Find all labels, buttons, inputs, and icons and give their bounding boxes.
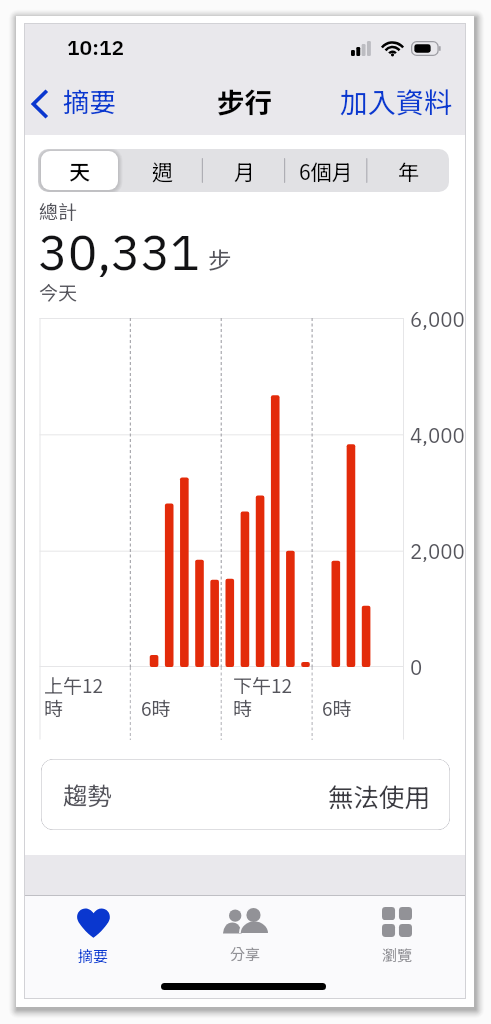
staticText: 0 xyxy=(410,654,423,681)
staticText: 月 xyxy=(234,156,255,186)
staticText: 分享 xyxy=(230,943,261,965)
button[interactable]: 摘要 xyxy=(25,81,145,127)
staticText: 上午12 xyxy=(44,671,104,699)
staticText: 6時 xyxy=(141,694,171,722)
staticText: 步行 xyxy=(217,81,272,121)
staticText: 週 xyxy=(152,156,173,186)
staticText: 趨勢 xyxy=(63,777,112,812)
button[interactable]: 天 xyxy=(38,149,121,192)
staticText: 無法使用 xyxy=(328,777,431,814)
staticText: 6個月 xyxy=(299,156,353,186)
staticText: 6,000 xyxy=(410,306,465,333)
staticText: 10:12 xyxy=(67,33,125,60)
button[interactable]: 6個月 xyxy=(285,149,367,192)
button[interactable]: 週 xyxy=(121,149,203,192)
staticText: 下午12 xyxy=(233,671,293,699)
button[interactable]: Browse xyxy=(327,896,467,996)
staticText: 天 xyxy=(69,156,90,186)
staticText: 瀏覽 xyxy=(382,944,413,966)
button[interactable]: Sharing xyxy=(175,896,315,996)
button[interactable]: 月 xyxy=(203,149,285,192)
staticText: 摘要 xyxy=(63,81,116,119)
staticText: 2,000 xyxy=(410,538,465,565)
staticText: 步 xyxy=(208,242,232,276)
staticText: 摘要 xyxy=(78,945,109,967)
staticText: 加入資料 xyxy=(340,81,453,122)
button[interactable]: 年 xyxy=(367,149,449,192)
staticText: 今天 xyxy=(39,278,78,306)
staticText: 30,331 xyxy=(38,219,200,283)
button[interactable]: Summary xyxy=(23,896,163,996)
staticText: 年 xyxy=(398,156,419,186)
button[interactable]: 趨勢 xyxy=(41,759,450,830)
staticText: 時 xyxy=(233,694,253,722)
button[interactable]: 加入資料 xyxy=(325,81,465,127)
staticText: 時 xyxy=(44,694,64,722)
staticText: 6時 xyxy=(322,694,352,722)
staticText: 4,000 xyxy=(410,422,465,449)
staticText: 總計 xyxy=(39,197,78,225)
